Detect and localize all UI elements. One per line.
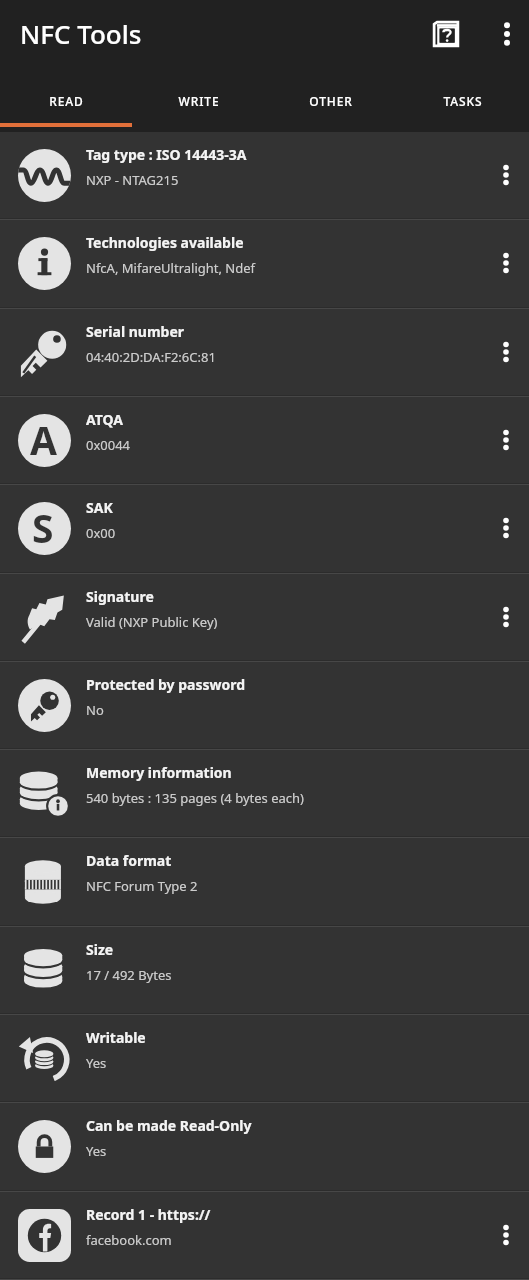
button[interactable]: Item options (481, 574, 529, 660)
staticText: Serial number (86, 322, 185, 341)
staticText: 04:40:2D:DA:F2:6C:81 (86, 348, 216, 366)
button[interactable]: Data format (0, 838, 529, 924)
staticText: Size (86, 940, 114, 959)
button[interactable]: Memory information (0, 750, 529, 836)
staticText: OTHER (309, 93, 353, 109)
staticText: No (86, 701, 104, 719)
button[interactable]: A (0, 397, 529, 483)
button[interactable]: S (0, 485, 529, 571)
staticText: ATQA (86, 410, 123, 429)
button[interactable]: Help (422, 11, 470, 59)
staticText: facebook.com (86, 1231, 172, 1249)
button[interactable]: OTHER (265, 70, 397, 132)
button[interactable]: Item options (481, 309, 529, 395)
staticText: Can be made Read-Only (86, 1116, 252, 1135)
staticText: READ (49, 93, 84, 109)
button[interactable]: Technologies available (0, 220, 529, 306)
button[interactable]: Item options (481, 485, 529, 571)
staticText: NXP - NTAG215 (86, 171, 179, 189)
button[interactable]: Serial number (0, 309, 529, 395)
staticText: Technologies available (86, 233, 244, 252)
staticText: TASKS (443, 93, 483, 109)
staticText: S (32, 501, 54, 554)
staticText: Protected by password (86, 675, 246, 694)
staticText: WRITE (178, 93, 220, 109)
button[interactable]: Item options (481, 132, 529, 218)
button[interactable]: Can be made Read-Only (0, 1103, 529, 1189)
button[interactable]: Item options (481, 220, 529, 306)
staticText: Yes (86, 1054, 107, 1072)
staticText: A (30, 413, 57, 466)
button[interactable]: READ (0, 70, 133, 132)
button[interactable]: More options (485, 13, 529, 57)
staticText: NFC Tools (20, 16, 142, 51)
staticText: 540 bytes : 135 pages (4 bytes each) (86, 789, 304, 807)
staticText: Tag type : ISO 14443-3A (86, 145, 247, 164)
staticText: Valid (NXP Public Key) (86, 613, 218, 631)
button[interactable]: Record 1 - https:// (0, 1192, 529, 1278)
button[interactable]: Size (0, 927, 529, 1013)
staticText: 17 / 492 Bytes (86, 966, 172, 984)
button[interactable]: WRITE (133, 70, 265, 132)
button[interactable]: Writable (0, 1015, 529, 1101)
staticText: 0x0044 (86, 436, 131, 454)
staticText: SAK (86, 498, 113, 517)
staticText: Yes (86, 1142, 107, 1160)
staticText: Record 1 - https:// (86, 1205, 211, 1224)
button[interactable]: Signature (0, 574, 529, 660)
staticText: Writable (86, 1028, 146, 1047)
button[interactable]: Item options (481, 1192, 529, 1278)
staticText: NFC Forum Type 2 (86, 877, 198, 895)
button[interactable]: Tag type : ISO 14443-3A (0, 132, 529, 218)
button[interactable]: Protected by password (0, 662, 529, 748)
staticText: NfcA, MifareUltralight, Ndef (86, 259, 256, 277)
staticText: Memory information (86, 763, 232, 782)
staticText: Signature (86, 587, 154, 606)
staticText: 0x00 (86, 524, 116, 542)
staticText: Data format (86, 851, 172, 870)
button[interactable]: Item options (481, 397, 529, 483)
button[interactable]: TASKS (397, 70, 529, 132)
